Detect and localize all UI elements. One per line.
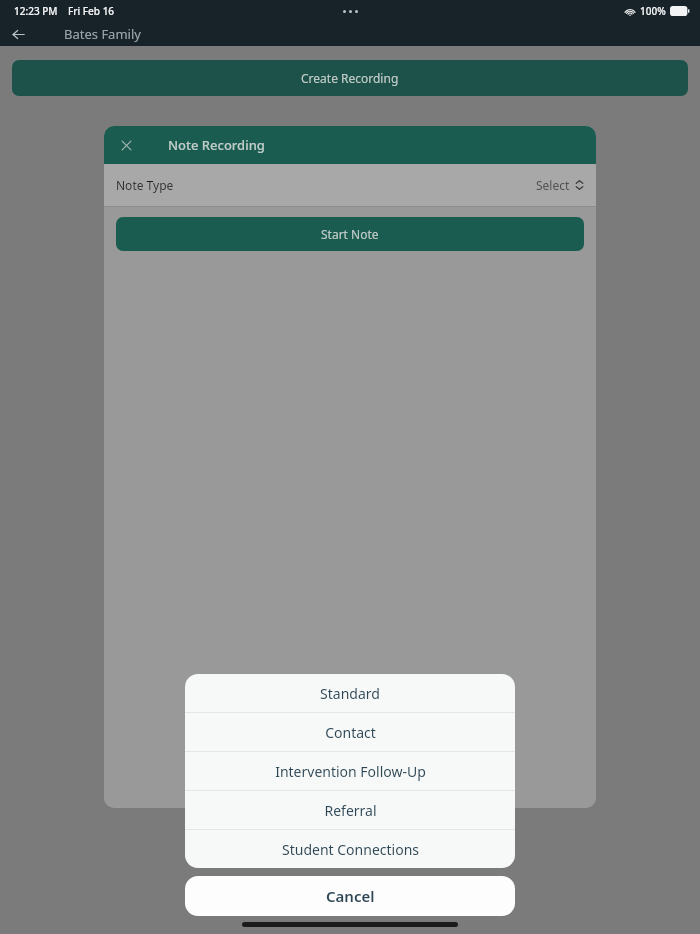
button[interactable]: Intervention Follow-Up — [185, 752, 515, 790]
staticText: Cancel — [326, 886, 375, 906]
button[interactable]: Create Recording — [12, 60, 688, 96]
button[interactable]: Close — [114, 133, 138, 157]
staticText: Standard — [320, 684, 380, 703]
button[interactable]: Cancel — [185, 876, 515, 916]
staticText: Intervention Follow-Up — [275, 762, 426, 781]
staticText: Referral — [324, 801, 377, 820]
staticText: 12:23 PM — [14, 4, 58, 18]
staticText: Contact — [325, 723, 376, 742]
staticText: Bates Family — [64, 25, 141, 43]
button[interactable]: Back — [6, 22, 30, 46]
staticText: Note Type — [116, 177, 174, 193]
button[interactable]: Standard — [185, 674, 515, 712]
button[interactable]: Referral — [185, 791, 515, 829]
staticText: 100% — [640, 4, 666, 18]
button[interactable]: Start Note — [116, 217, 584, 251]
staticText: Select — [536, 177, 570, 193]
staticText: Create Recording — [301, 70, 399, 86]
staticText: Start Note — [321, 226, 379, 242]
staticText: Student Connections — [282, 840, 419, 859]
staticText: Fri Feb 16 — [68, 4, 115, 18]
button[interactable]: Note Type — [104, 164, 596, 206]
button[interactable]: Student Connections — [185, 830, 515, 868]
staticText: Note Recording — [168, 136, 265, 154]
button[interactable]: Contact — [185, 713, 515, 751]
